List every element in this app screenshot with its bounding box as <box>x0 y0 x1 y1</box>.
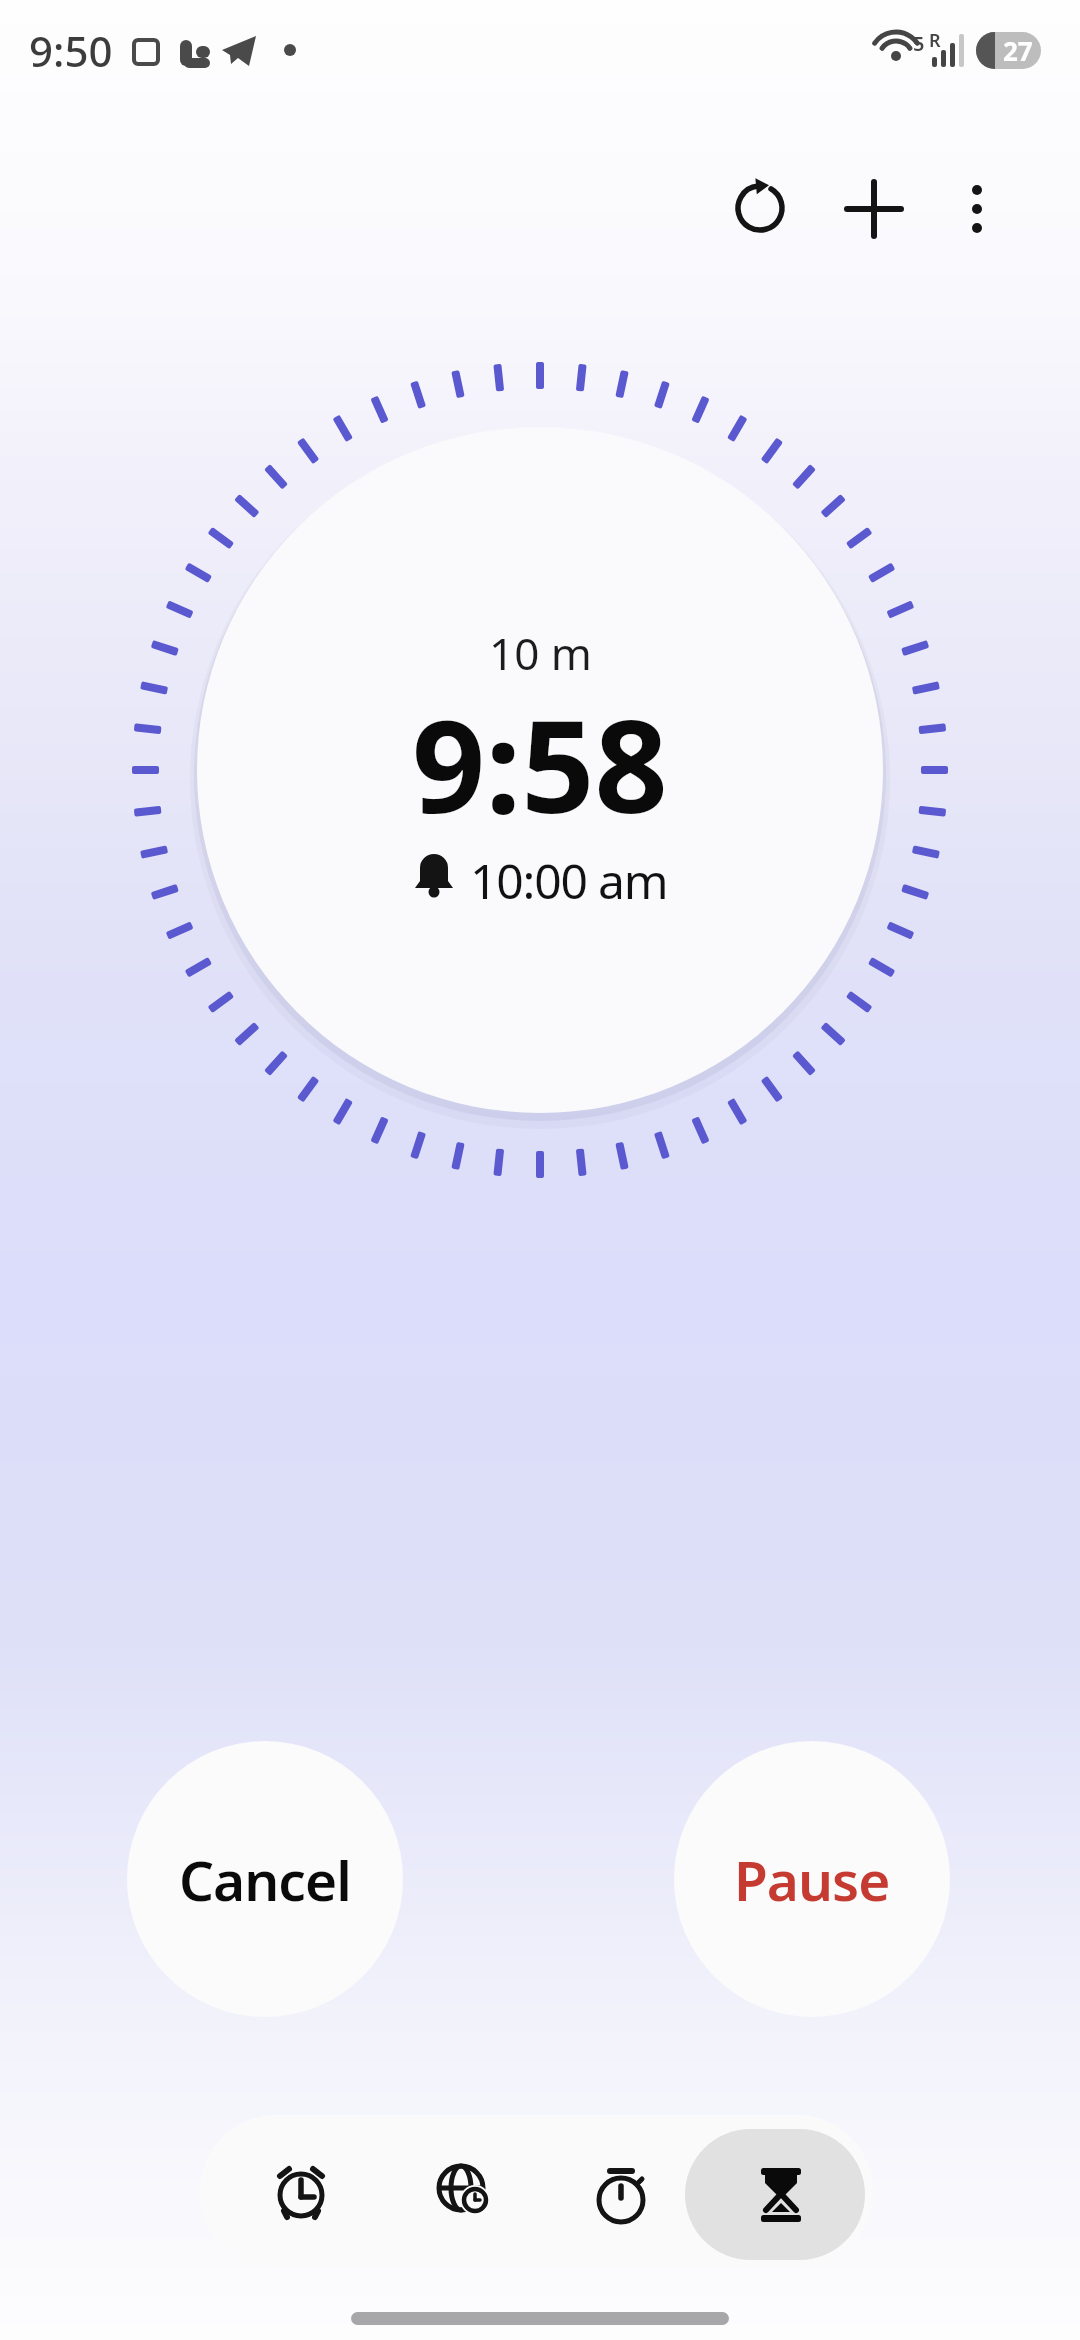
staticText: Cancel <box>179 1842 351 1917</box>
button[interactable]: Pause <box>674 1741 950 2017</box>
button[interactable]: Cancel <box>127 1741 403 2017</box>
staticText: 10 m <box>489 623 592 683</box>
staticText: 27 <box>1003 33 1033 68</box>
button[interactable] <box>221 2115 381 2267</box>
button[interactable] <box>832 167 916 251</box>
button[interactable] <box>541 2115 701 2267</box>
staticText: 5 <box>913 30 925 57</box>
staticText: 10:00 am <box>470 848 668 908</box>
button[interactable] <box>701 2115 861 2267</box>
button[interactable] <box>718 166 802 250</box>
staticText: 9:50 <box>29 22 113 74</box>
staticText: Pause <box>734 1842 890 1917</box>
staticText: R <box>929 28 941 53</box>
staticText: 9:58 <box>412 676 668 838</box>
button[interactable] <box>945 167 1009 251</box>
button[interactable] <box>381 2115 541 2267</box>
